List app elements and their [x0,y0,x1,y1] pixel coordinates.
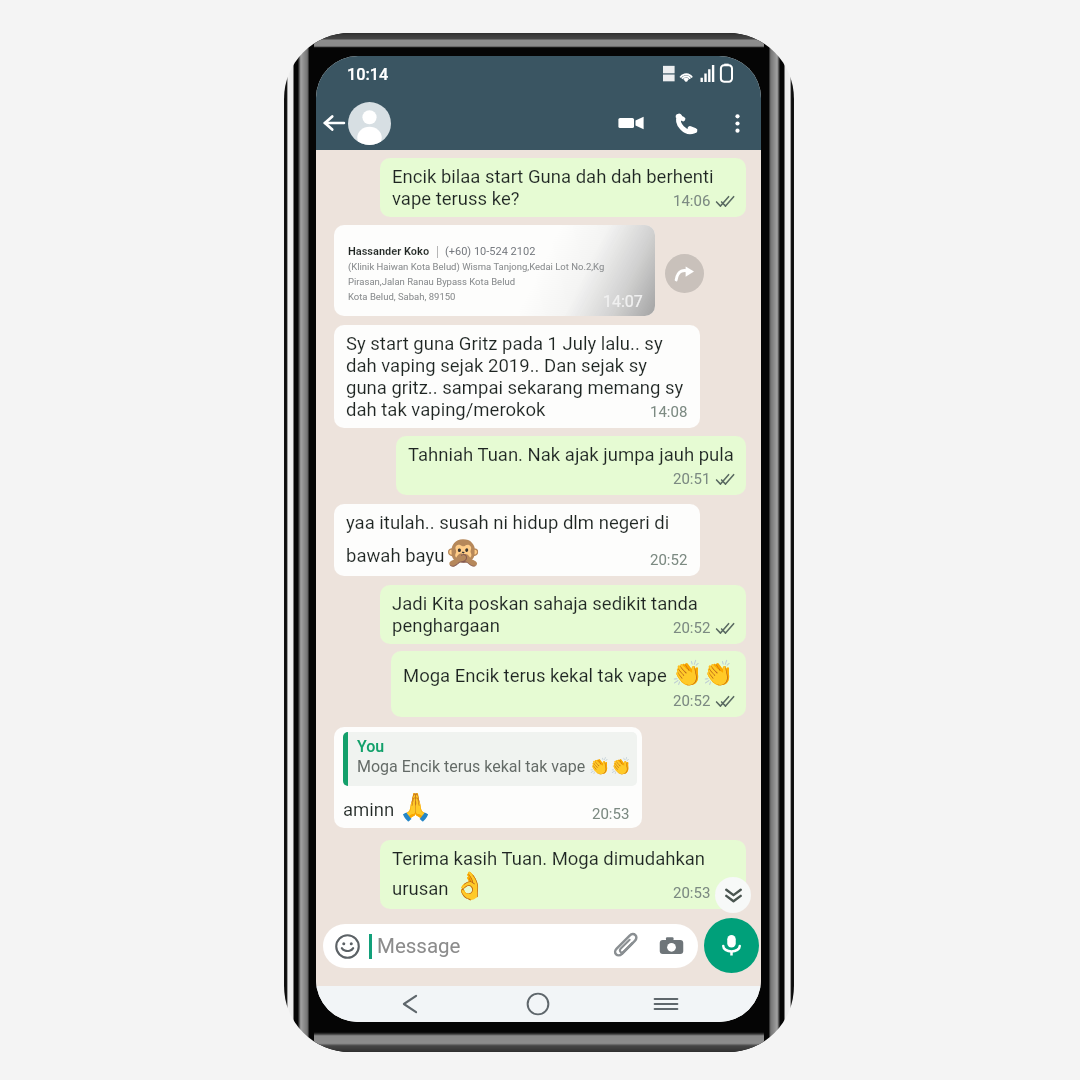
staticText: Encik bilaa start Guna dah dah berhenti … [392,166,734,210]
staticText: (Klinik Haiwan Kota Belud) Wisma Tanjong… [348,261,605,302]
button[interactable]: Record voice message [704,918,759,973]
staticText: 20:51 [673,470,711,488]
button[interactable]: More options [727,113,748,134]
button[interactable]: yaa itulah.. susah ni hidup dlm negeri d… [334,504,700,576]
button[interactable]: Encik bilaa start Guna dah dah berhenti … [380,158,746,217]
button[interactable]: Hassander Koko [334,225,655,316]
button[interactable]: Tahniah Tuan. Nak ajak jumpa jauh pula [396,436,746,495]
staticText: Message [377,934,461,958]
staticText: Jadi Kita poskan sahaja sedikit tanda pe… [392,593,734,637]
staticText: 14:06 [673,192,711,210]
staticText: 20:52 [673,692,711,710]
staticText: 14:07 [603,292,643,311]
staticText: (+60) 10-524 2102 [445,245,536,258]
staticText: 10:14 [347,65,389,84]
staticText: 20:53 [673,884,711,902]
button[interactable]: Message [323,924,698,968]
button[interactable]: Jadi Kita poskan sahaja sedikit tanda pe… [380,585,746,644]
staticText: yaa itulah.. susah ni hidup dlm negeri d… [346,512,688,569]
staticText: Moga Encik terus kekal tak vape 👏👏 [403,659,734,688]
button[interactable]: You [334,727,642,828]
button[interactable]: Terima kasih Tuan. Moga dimudahkan urusa… [380,840,746,909]
button[interactable]: Video call [616,108,646,138]
staticText: Sy start guna Gritz pada 1 July lalu.. s… [346,333,688,421]
staticText: 20:52 [650,551,688,569]
button[interactable]: Voice call [674,111,699,136]
staticText: aminn 🙏 [343,791,433,823]
staticText: You [357,737,385,756]
button[interactable]: Moga Encik terus kekal tak vape 👏👏 [391,651,746,717]
staticText: Tahniah Tuan. Nak ajak jumpa jauh pula [408,444,734,466]
button[interactable]: Contact profile [348,102,391,145]
button[interactable]: Forward message [665,254,704,293]
button[interactable]: Back [393,987,427,1021]
staticText: Moga Encik terus kekal tak vape 👏👏 [357,756,632,776]
staticText: 20:53 [592,805,630,823]
button[interactable]: Recent apps [649,987,683,1021]
button[interactable]: Scroll to bottom [715,877,751,913]
staticText: 20:52 [673,619,711,637]
staticText: Terima kasih Tuan. Moga dimudahkan urusa… [392,848,734,902]
staticText: Hassander Koko [348,245,430,258]
staticText: 14:08 [650,403,688,421]
button[interactable]: Home [521,987,555,1021]
button[interactable]: Sy start guna Gritz pada 1 July lalu.. s… [334,325,700,428]
button[interactable]: Back [323,112,345,134]
